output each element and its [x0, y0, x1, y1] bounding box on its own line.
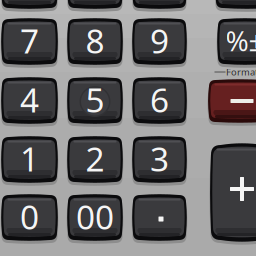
button[interactable]	[216, 0, 256, 8]
button[interactable]	[2, 0, 57, 8]
staticText: 7	[20, 18, 39, 63]
button[interactable]	[133, 0, 186, 8]
button[interactable]: 0	[2, 195, 57, 240]
button[interactable]: 7	[2, 19, 57, 64]
staticText: %±	[225, 22, 256, 59]
button[interactable]	[68, 0, 122, 8]
button[interactable]: 00	[68, 195, 122, 240]
button[interactable]	[133, 195, 186, 240]
staticText: 0	[20, 194, 39, 239]
staticText: 5	[85, 77, 104, 122]
button[interactable]: 5	[68, 78, 122, 123]
button[interactable]	[211, 145, 256, 240]
button[interactable]: 1	[2, 137, 57, 182]
staticText: 00	[76, 194, 114, 239]
button[interactable]: 2	[68, 137, 122, 182]
staticText: 1	[20, 136, 39, 181]
staticText: 8	[85, 18, 104, 63]
button[interactable]: 8	[68, 19, 122, 64]
staticText: 9	[150, 18, 169, 63]
button[interactable]: 4	[2, 78, 57, 123]
button[interactable]: 3	[133, 137, 186, 182]
staticText: 2	[85, 136, 104, 181]
staticText: 6	[150, 77, 169, 122]
staticText: 4	[20, 77, 39, 122]
staticText: 3	[150, 136, 169, 181]
staticText: Format	[226, 66, 256, 78]
button[interactable]: %±	[218, 19, 256, 64]
button[interactable]: 6	[133, 78, 186, 123]
button[interactable]	[209, 80, 256, 122]
button[interactable]: 9	[133, 19, 186, 64]
